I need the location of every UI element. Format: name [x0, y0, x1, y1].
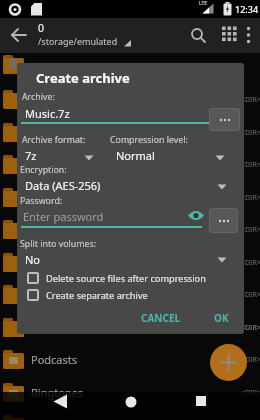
staticText: <DIR> [241, 388, 260, 398]
staticText: <DIR> [241, 95, 260, 105]
staticText: Password: [20, 195, 63, 207]
button[interactable] [240, 22, 258, 48]
button[interactable] [118, 392, 144, 418]
button[interactable]: Movies [0, 285, 260, 316]
staticText: Documents [31, 222, 91, 237]
staticText: Download [31, 255, 84, 270]
staticText: Enter password [23, 209, 104, 224]
staticText: Data (AES-256) [25, 178, 101, 193]
button[interactable] [218, 22, 244, 48]
staticText: CANCEL [141, 311, 181, 325]
staticText: Music.7z [25, 106, 70, 121]
button[interactable]: Ringtones [0, 383, 260, 414]
button[interactable] [186, 22, 212, 48]
staticText: 7z [25, 148, 37, 163]
staticText: Podcasts [31, 352, 78, 367]
button[interactable]: Delete source files after compression [24, 271, 244, 287]
staticText: Create archive [36, 69, 130, 87]
staticText: <DIR> [241, 355, 260, 365]
staticText: <DIR> [241, 225, 260, 235]
staticText: Delete source files after compression [46, 272, 206, 285]
staticText: <DIR> [241, 323, 260, 333]
staticText: Split into volumes: [20, 238, 96, 250]
button[interactable] [48, 392, 74, 418]
staticText: Create separate archive [46, 289, 148, 302]
button[interactable]: Data (AES-256) [22, 177, 227, 193]
button[interactable] [6, 22, 32, 48]
button[interactable]: Documents [0, 220, 260, 251]
button[interactable]: No [22, 251, 232, 267]
button[interactable]: Podcasts [0, 350, 260, 381]
staticText: Music [31, 320, 62, 335]
button[interactable]: OK [203, 308, 239, 328]
button[interactable]: Download [0, 253, 260, 284]
staticText: Compression level: [110, 134, 188, 146]
button[interactable]: 7z [22, 147, 102, 163]
staticText: <DIR> [241, 193, 260, 203]
staticText: 12:34 [235, 3, 259, 15]
button[interactable] [0, 55, 260, 86]
button[interactable] [209, 108, 240, 131]
staticText: OK [214, 311, 229, 325]
staticText: <DIR> [241, 323, 260, 333]
button[interactable]: Audiobooks [0, 155, 260, 186]
button[interactable]: Enter password [21, 206, 187, 227]
staticText: No [25, 252, 41, 267]
staticText: /storage/emulated [38, 35, 118, 47]
staticText: Alarms [31, 92, 68, 107]
staticText: Notifications [31, 320, 97, 335]
staticText: Encryption: [20, 164, 67, 176]
staticText: Archive format: [22, 134, 86, 146]
button[interactable]: Android [0, 123, 260, 154]
staticText: LTE [199, 0, 208, 7]
button[interactable]: Create separate archive [24, 288, 244, 304]
staticText: <DIR> [241, 128, 260, 138]
button[interactable] [209, 208, 238, 233]
button[interactable]: DCIM [0, 188, 260, 219]
button[interactable] [210, 344, 247, 381]
staticText: Normal [116, 148, 155, 163]
button[interactable]: Music.7z [21, 103, 207, 124]
button[interactable] [188, 210, 204, 221]
staticText: <DIR> [241, 258, 260, 268]
staticText: <DIR> [241, 290, 260, 300]
button[interactable]: Music [0, 318, 260, 349]
staticText: <DIR> [241, 160, 260, 170]
staticText: 0 [38, 21, 45, 35]
staticText: Android [31, 125, 73, 140]
staticText: Audiobooks [31, 157, 93, 172]
staticText: Archive: [22, 91, 55, 103]
button[interactable]: CANCEL [133, 308, 189, 328]
button[interactable]: Alarms [0, 415, 260, 420]
staticText: Ringtones [31, 385, 84, 400]
staticText: Movies [31, 287, 68, 302]
button[interactable]: Alarms [0, 90, 260, 121]
button[interactable] [188, 392, 214, 418]
staticText: DCIM [31, 190, 60, 205]
button[interactable]: Normal [113, 147, 225, 163]
button[interactable]: Notifications [0, 318, 260, 349]
